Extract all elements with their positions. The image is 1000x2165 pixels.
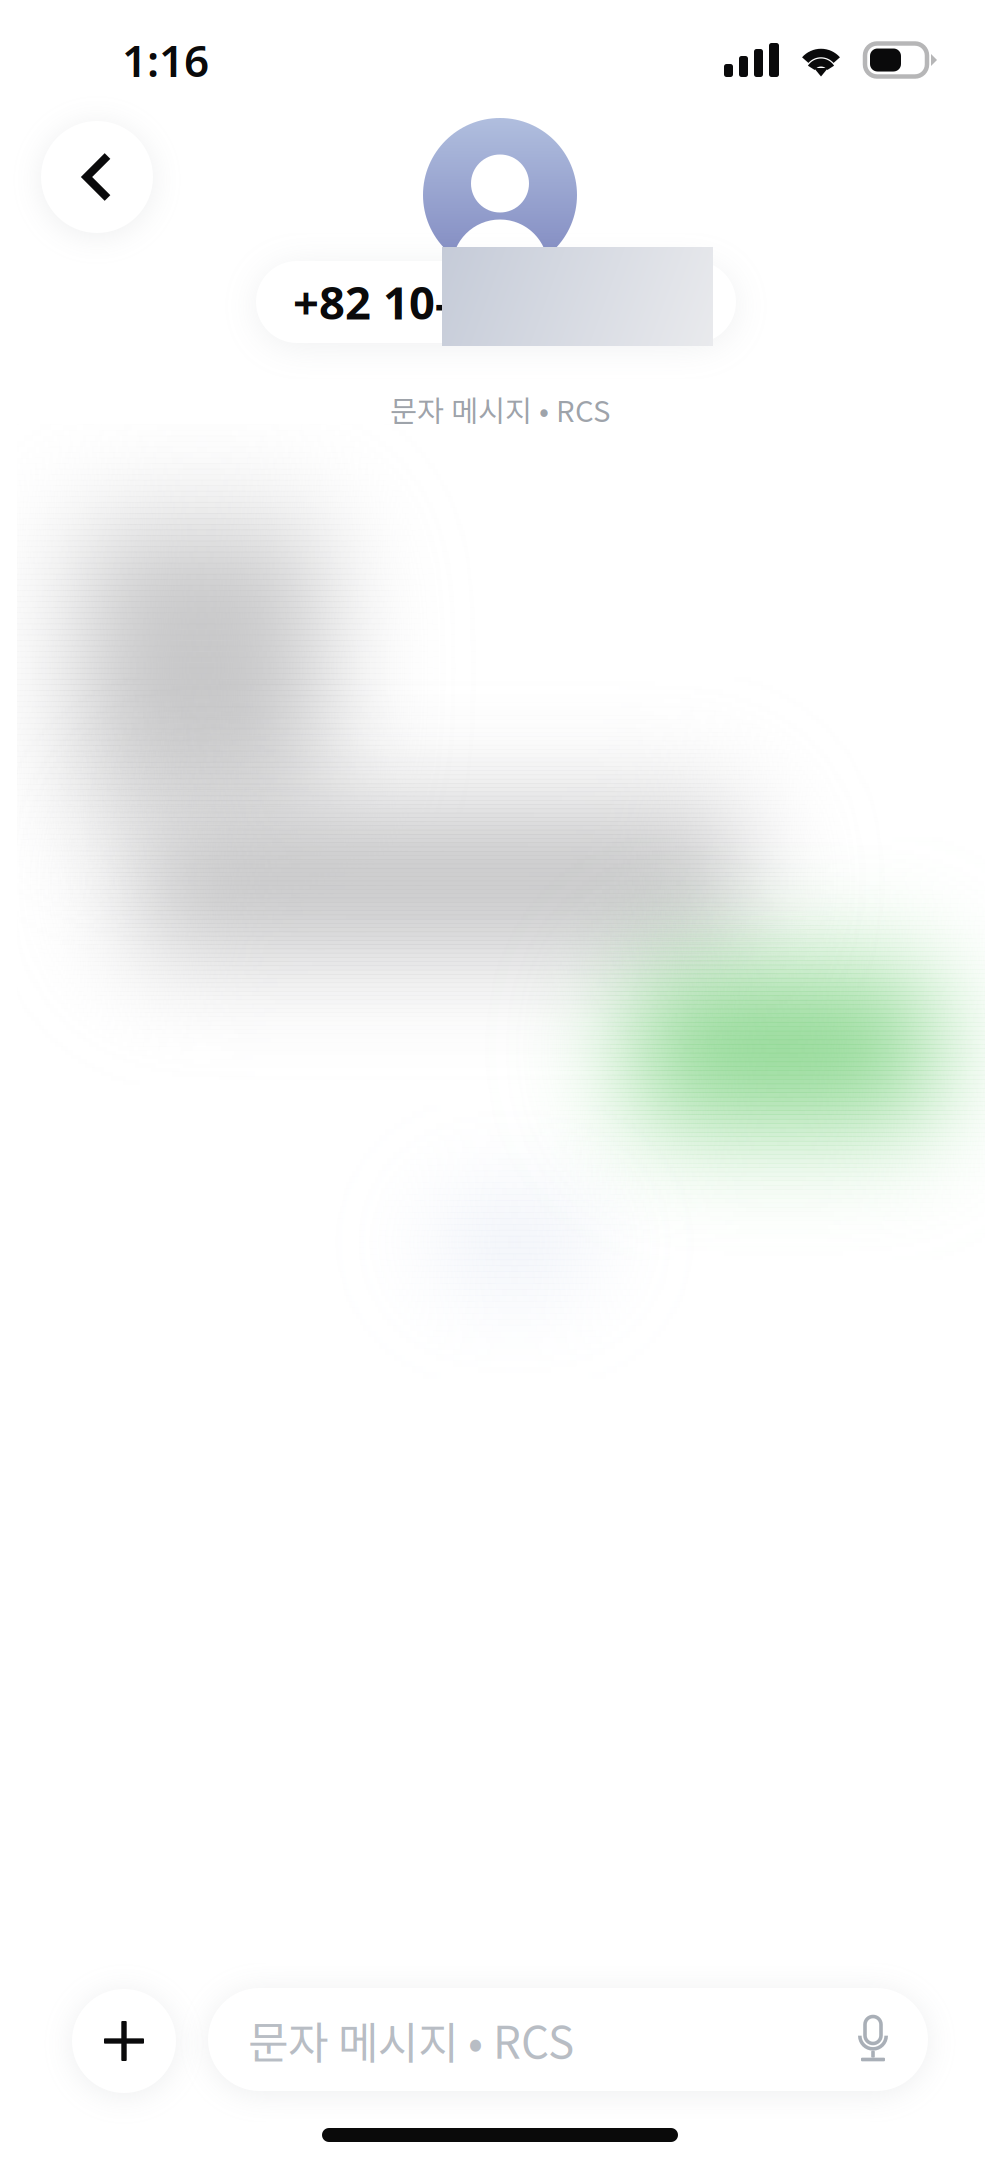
staticText: 1:16 [122,31,209,89]
staticText: +82 10- [293,272,450,332]
button[interactable]: Add attachment [72,1989,176,2093]
staticText: 문자 메시지 • RCS [248,2008,574,2071]
button[interactable]: Back [41,121,153,233]
button[interactable]: +82 10- [256,261,736,343]
button[interactable]: 문자 메시지 • RCS [208,1988,928,2091]
staticText: 문자 메시지 • RCS [390,388,610,430]
